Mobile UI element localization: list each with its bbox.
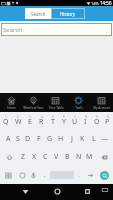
staticText: N [76, 152, 82, 162]
staticText: F [37, 134, 41, 144]
button[interactable]: Shift [0, 148, 18, 166]
staticText: 7 [74, 115, 76, 119]
staticText: K [80, 134, 85, 144]
staticText: 9 [96, 115, 98, 119]
button[interactable]: S [13, 130, 23, 148]
staticText: 5 [52, 115, 54, 119]
button[interactable]: Search [1, 23, 112, 36]
button[interactable]: 1 [0, 112, 12, 130]
button[interactable]: 8 [80, 112, 91, 130]
button[interactable]: 4 [36, 112, 47, 130]
button[interactable]: M [84, 148, 95, 166]
button[interactable]: What's at Your [22, 93, 44, 112]
staticText: 6 [63, 115, 65, 119]
staticText: U [72, 117, 78, 127]
button[interactable]: A [3, 130, 13, 148]
button[interactable]: Home [50, 184, 64, 198]
staticText: L [92, 134, 96, 144]
button[interactable]: Voice input [28, 166, 39, 184]
staticText: 14:56 [100, 0, 112, 6]
button[interactable]: Next [85, 166, 96, 184]
button[interactable]: Search [100, 171, 109, 180]
staticText: C [43, 152, 48, 162]
button[interactable]: Recent apps [80, 184, 94, 198]
staticText: X [32, 152, 37, 162]
button[interactable]: V [51, 148, 62, 166]
staticText: B [65, 152, 70, 162]
button[interactable]: Time Table [44, 93, 67, 112]
staticText: D [25, 134, 31, 144]
staticText: 14% [91, 1, 99, 6]
button[interactable]: X [29, 148, 40, 166]
button[interactable]: B [62, 148, 73, 166]
staticText: Y [62, 117, 66, 127]
button[interactable]: History [51, 8, 85, 19]
button[interactable]: 7 [69, 112, 80, 130]
button[interactable]: L [88, 130, 99, 148]
staticText: 2 [17, 115, 19, 119]
staticText: , [44, 171, 46, 179]
button[interactable]: 5 [47, 112, 58, 130]
button[interactable]: Search [25, 8, 51, 19]
button[interactable]: Z [18, 148, 29, 166]
staticText: Tools [75, 106, 83, 110]
staticText: What's at Your [23, 106, 44, 110]
button[interactable]: N [73, 148, 84, 166]
button[interactable]: Switch keyboard [99, 184, 111, 196]
button[interactable]: My Account [90, 93, 113, 112]
staticText: Q [3, 117, 9, 127]
staticText: Z [21, 152, 26, 162]
button[interactable]: C [40, 148, 51, 166]
staticText: H [58, 134, 64, 144]
button[interactable]: Home [0, 93, 22, 112]
button[interactable]: Tools [67, 93, 90, 112]
button[interactable]: Delete [95, 148, 113, 166]
button[interactable]: . [74, 166, 85, 184]
staticText: My Account [93, 106, 110, 110]
staticText: History [60, 11, 76, 17]
staticText: M [86, 152, 93, 162]
button[interactable]: H [55, 130, 66, 148]
button[interactable]: 6 [58, 112, 69, 130]
staticText: S [16, 134, 20, 144]
button[interactable]: 3 [24, 112, 36, 130]
button[interactable]: Back [18, 184, 32, 198]
staticText: G [47, 134, 53, 144]
staticText: P [105, 117, 110, 127]
button[interactable]: Emoji [17, 166, 28, 184]
staticText: Home [7, 106, 16, 110]
staticText: Search [31, 11, 46, 17]
staticText: R [39, 117, 44, 127]
staticText: Time Table [48, 106, 64, 110]
staticText: — [101, 134, 108, 144]
staticText: 3 [29, 115, 31, 119]
button[interactable]: D [23, 130, 33, 148]
staticText: I [84, 117, 87, 127]
staticText: V [54, 152, 59, 162]
staticText: 4 [41, 115, 43, 119]
staticText: E [28, 117, 32, 127]
button[interactable]: 0 [102, 112, 113, 130]
staticText: 1 [5, 115, 7, 119]
button[interactable]: K [77, 130, 88, 148]
button[interactable]: 2 [12, 112, 24, 130]
button[interactable]: G [44, 130, 55, 148]
button[interactable]: J [66, 130, 77, 148]
staticText: A [6, 134, 11, 144]
staticText: T [51, 117, 55, 127]
staticText: 0 [107, 115, 109, 119]
button[interactable]: F [33, 130, 44, 148]
staticText: 8 [85, 115, 87, 119]
staticText: Search [3, 26, 22, 34]
button[interactable]: Symbols [0, 166, 17, 184]
staticText: . [79, 171, 81, 179]
staticText: W [15, 117, 22, 127]
staticText: J [71, 134, 73, 144]
staticText: O [94, 117, 100, 127]
button[interactable]: 9 [91, 112, 102, 130]
button[interactable]: , [39, 166, 50, 184]
button[interactable]: — [99, 130, 110, 148]
